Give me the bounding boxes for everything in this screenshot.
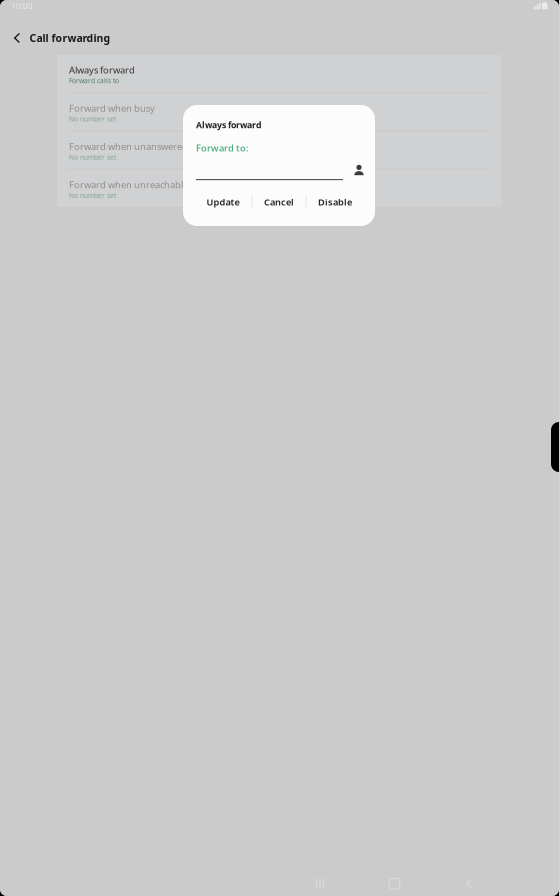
staticText: Update bbox=[206, 196, 239, 208]
button[interactable]: Choose contact bbox=[349, 161, 369, 179]
staticText: No number set bbox=[69, 191, 116, 200]
staticText: Forward when unreachable bbox=[69, 178, 188, 191]
staticText: Call forwarding bbox=[29, 31, 110, 45]
button[interactable]: Forward when unreachable bbox=[57, 170, 502, 207]
staticText: Forward calls to bbox=[69, 76, 119, 85]
staticText: Disable bbox=[318, 196, 352, 208]
button[interactable]: Forward when busy bbox=[57, 93, 502, 130]
button[interactable]: Disable bbox=[306, 191, 363, 213]
button[interactable]: Always forward bbox=[57, 55, 502, 92]
staticText: Forward when busy bbox=[69, 102, 155, 114]
staticText: Cancel bbox=[264, 196, 294, 208]
staticText: Always forward bbox=[69, 63, 135, 76]
button[interactable]: Cancel bbox=[252, 191, 305, 213]
staticText: No number set bbox=[69, 114, 116, 123]
staticText: 10:00 bbox=[11, 0, 33, 11]
button[interactable]: Update bbox=[194, 191, 251, 213]
staticText: Forward to: bbox=[196, 141, 249, 154]
staticText: Forward when unanswered bbox=[69, 140, 188, 153]
staticText: Always forward bbox=[196, 119, 261, 131]
staticText: No number set bbox=[69, 152, 116, 162]
button[interactable]: Forward when unanswered bbox=[57, 131, 502, 169]
button[interactable]: Back bbox=[4, 23, 30, 53]
